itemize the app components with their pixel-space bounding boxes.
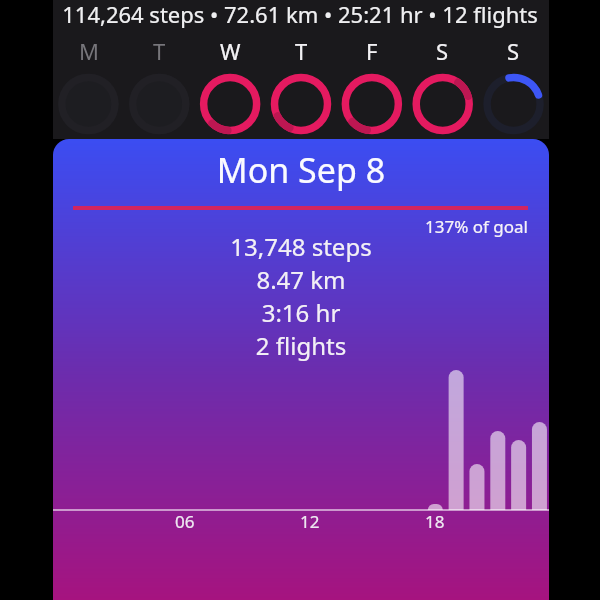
button[interactable]: T bbox=[124, 36, 195, 144]
staticText: 13,748 steps bbox=[53, 230, 549, 263]
staticText: 114,264 steps • 72.61 km • 25:21 hr • 12… bbox=[0, 0, 600, 29]
staticText: 3:16 hr bbox=[53, 296, 549, 329]
button[interactable]: S bbox=[478, 36, 549, 144]
staticText: T bbox=[153, 36, 166, 66]
staticText: 2 flights bbox=[53, 329, 549, 362]
button[interactable]: M bbox=[53, 36, 124, 144]
staticText: S bbox=[436, 36, 449, 66]
staticText: 12 bbox=[300, 510, 320, 530]
staticText: T bbox=[295, 36, 308, 66]
staticText: F bbox=[366, 36, 378, 66]
staticText: Mon Sep 8 bbox=[53, 147, 549, 193]
button[interactable]: Mon Sep 8 bbox=[53, 139, 549, 600]
staticText: 18 bbox=[425, 510, 445, 530]
staticText: S bbox=[507, 36, 520, 66]
staticText: W bbox=[220, 36, 241, 66]
button[interactable]: T bbox=[266, 36, 337, 144]
button[interactable]: S bbox=[407, 36, 478, 144]
button[interactable]: F bbox=[336, 36, 407, 144]
button[interactable]: W bbox=[195, 36, 266, 144]
staticText: 8.47 km bbox=[53, 263, 549, 296]
staticText: M bbox=[79, 36, 99, 66]
staticText: 137% of goal bbox=[53, 215, 528, 238]
staticText: 06 bbox=[175, 510, 195, 530]
